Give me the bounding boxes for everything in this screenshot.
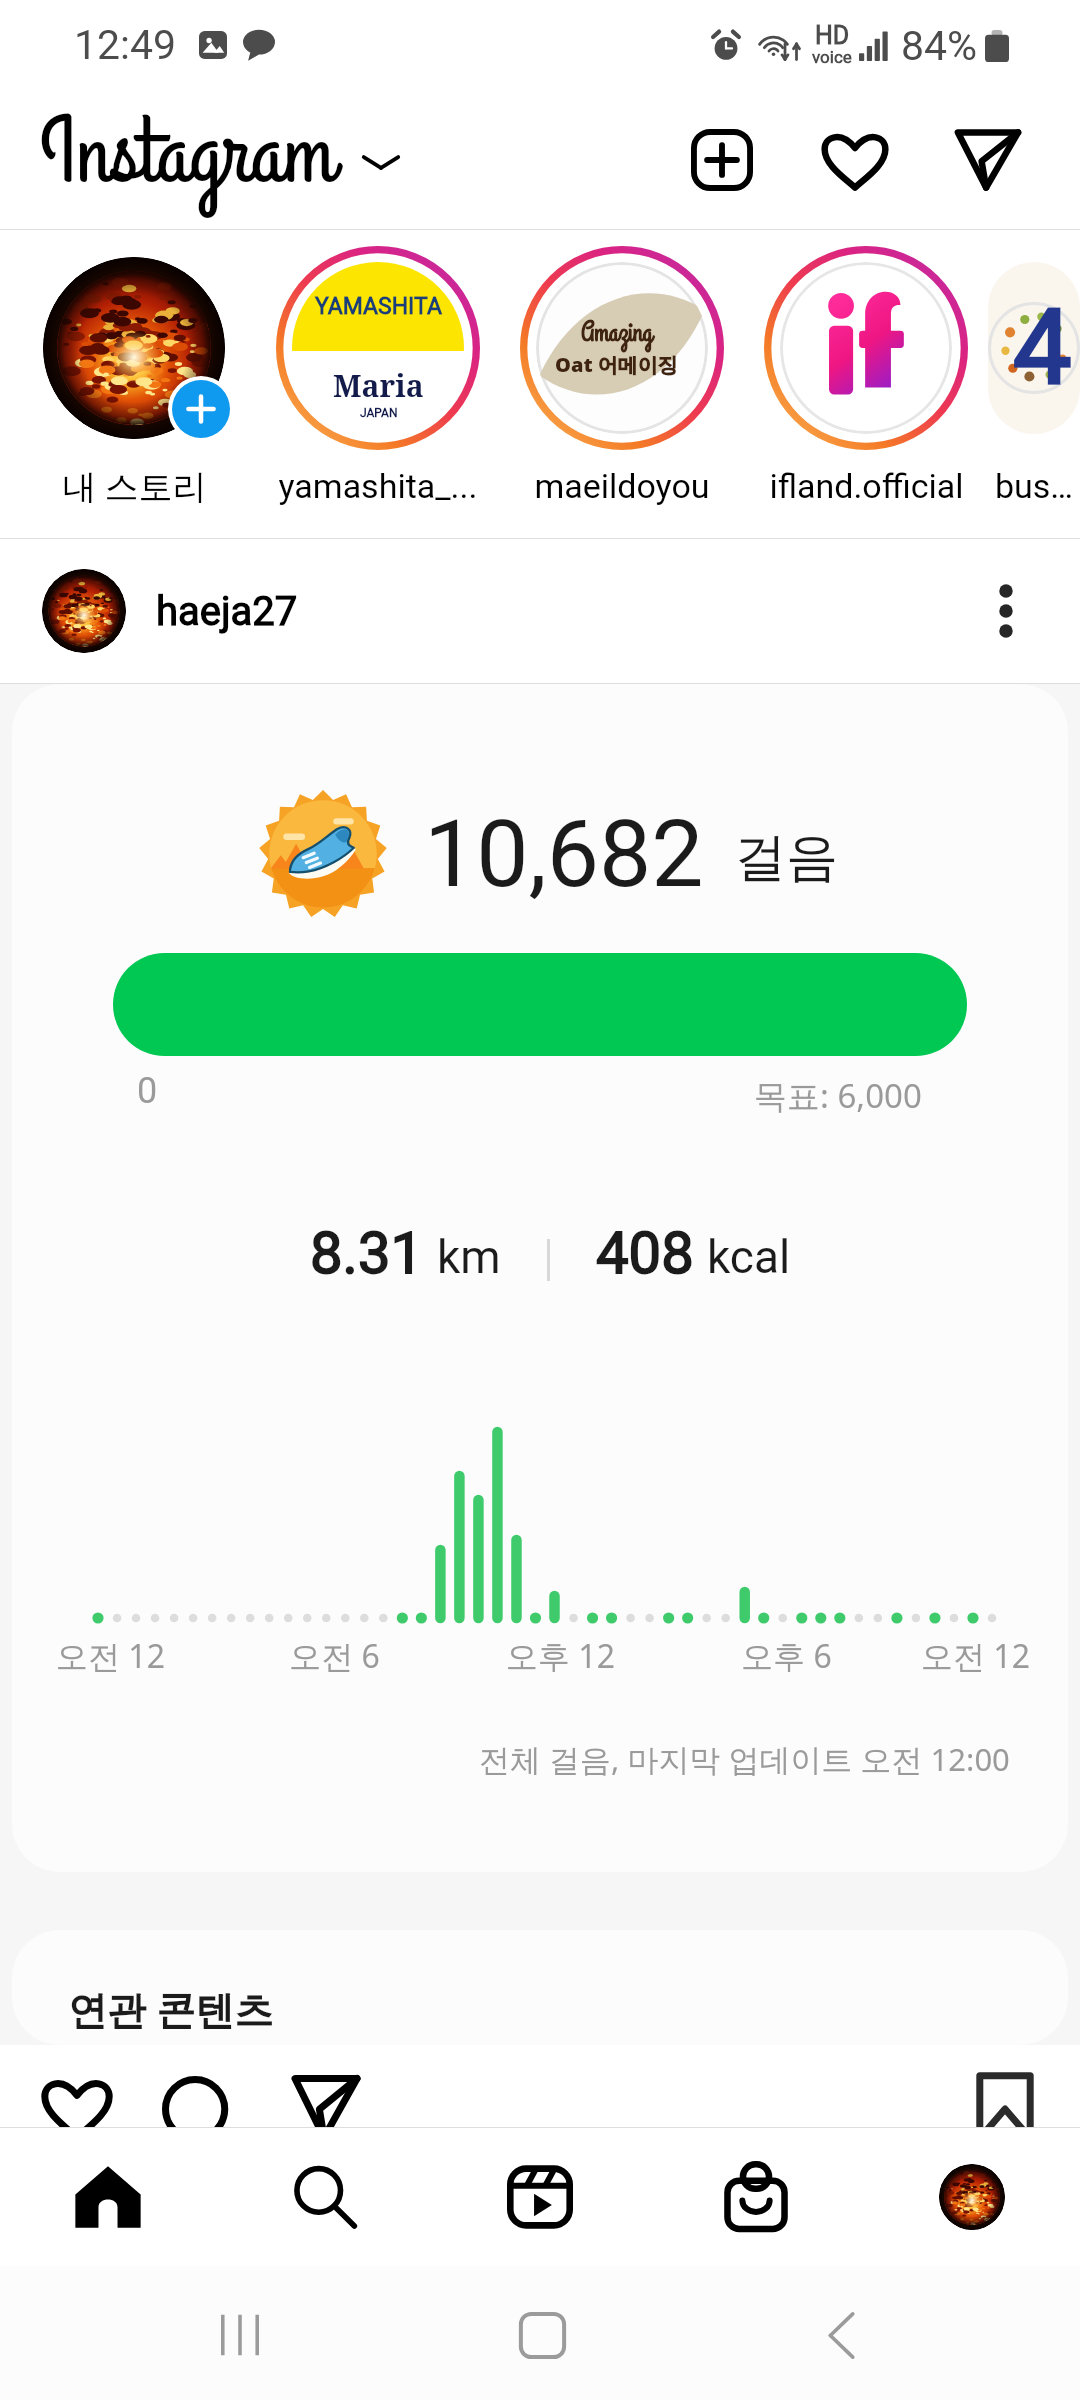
staticText: Oat 어메이징 bbox=[555, 351, 678, 378]
staticText: 오후 12 bbox=[506, 1634, 615, 1678]
staticText: haeja27 bbox=[156, 588, 298, 635]
button[interactable]: Amazing bbox=[500, 230, 744, 506]
staticText: ifland.official bbox=[769, 466, 964, 506]
button[interactable]: 내 스토리 bbox=[12, 230, 256, 509]
button[interactable]: Comment bbox=[134, 2076, 262, 2127]
staticText: 8.31 bbox=[310, 1219, 424, 1287]
staticText: Maria bbox=[333, 365, 424, 406]
button[interactable]: 4 bbox=[988, 230, 1080, 506]
staticText: 오전 12 bbox=[921, 1634, 1030, 1678]
staticText: maeildoyou bbox=[534, 466, 710, 506]
staticText: 연관 콘텐츠 bbox=[68, 1982, 274, 2035]
staticText: 10,682 bbox=[424, 800, 704, 909]
staticText: km bbox=[437, 1230, 501, 1284]
button[interactable]: Activity bbox=[809, 114, 901, 206]
button[interactable]: Recents bbox=[150, 2266, 330, 2400]
button[interactable]: Instagram bbox=[40, 97, 401, 223]
button[interactable]: Like bbox=[20, 2076, 134, 2127]
staticText: 408 bbox=[596, 1219, 694, 1287]
button[interactable]: Home bbox=[0, 2128, 216, 2266]
button[interactable]: Save bbox=[950, 2073, 1060, 2127]
button[interactable]: Search bbox=[216, 2128, 432, 2266]
staticText: 오전 6 bbox=[289, 1634, 380, 1678]
button[interactable]: New post bbox=[676, 114, 768, 206]
button[interactable]: ifland.official bbox=[744, 230, 988, 506]
staticText: 0 bbox=[137, 1070, 158, 1112]
button[interactable]: Back bbox=[751, 2266, 931, 2400]
staticText: 전체 걸음, 마지막 업데이트 오전 12:00 bbox=[479, 1738, 1010, 1780]
staticText: YAMASHITA bbox=[315, 293, 442, 320]
button[interactable]: Messages bbox=[942, 114, 1034, 206]
button[interactable]: Home bbox=[452, 2266, 632, 2400]
staticText: 목표: 6,000 bbox=[754, 1073, 922, 1118]
button[interactable]: Shop bbox=[648, 2128, 864, 2266]
staticText: voice bbox=[812, 47, 852, 67]
staticText: HD bbox=[815, 21, 850, 50]
staticText: 4 bbox=[1013, 287, 1072, 409]
staticText: 오후 6 bbox=[741, 1634, 832, 1678]
button[interactable]: YAMASHITA bbox=[256, 230, 500, 506]
button[interactable]: Profile bbox=[864, 2128, 1080, 2266]
staticText: Amazing bbox=[581, 314, 653, 351]
staticText: busan... bbox=[992, 466, 1076, 506]
staticText: JAPAN bbox=[360, 406, 398, 420]
button[interactable]: haeja27 bbox=[0, 539, 1080, 683]
button[interactable]: Reels bbox=[432, 2128, 648, 2266]
staticText: 12:49 bbox=[74, 21, 177, 69]
staticText: 걸음 bbox=[734, 825, 838, 891]
staticText: 오전 12 bbox=[56, 1634, 165, 1678]
staticText: Instagram bbox=[40, 91, 335, 217]
staticText: 84% bbox=[901, 22, 978, 70]
staticText: kcal bbox=[707, 1230, 791, 1284]
button[interactable]: More options bbox=[954, 559, 1058, 663]
staticText: yamashita_... bbox=[278, 466, 478, 506]
staticText: 내 스토리 bbox=[62, 466, 207, 509]
button[interactable]: Share bbox=[262, 2076, 390, 2127]
